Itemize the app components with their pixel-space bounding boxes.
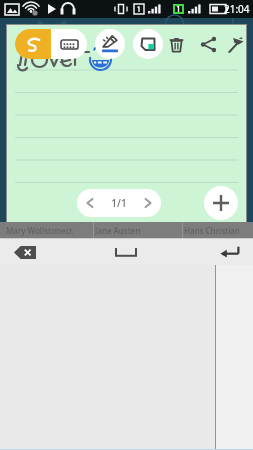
staticText: Mary Wollstonecr. (6, 225, 74, 236)
staticText: Jane Austen (95, 225, 141, 236)
button[interactable]: Pin (227, 31, 246, 57)
button[interactable]: Enter (213, 241, 247, 263)
button[interactable]: Next page (135, 189, 161, 217)
button[interactable]: Handwriting mode (15, 29, 51, 59)
button[interactable]: Previous page (77, 189, 103, 217)
button[interactable]: Space (108, 241, 144, 263)
button[interactable]: Add page (204, 186, 238, 220)
button[interactable]: Keyboard mode (51, 29, 87, 59)
staticText: 21:04 (224, 2, 250, 16)
button[interactable]: Backspace (10, 241, 40, 263)
button[interactable]: Pen tool (95, 29, 125, 59)
button[interactable]: Insert shape (133, 29, 163, 59)
button[interactable]: Share (195, 31, 221, 57)
staticText: 1/1 (111, 196, 127, 210)
button[interactable]: Delete (163, 31, 189, 57)
staticText: Hans Christian An. (184, 225, 253, 236)
